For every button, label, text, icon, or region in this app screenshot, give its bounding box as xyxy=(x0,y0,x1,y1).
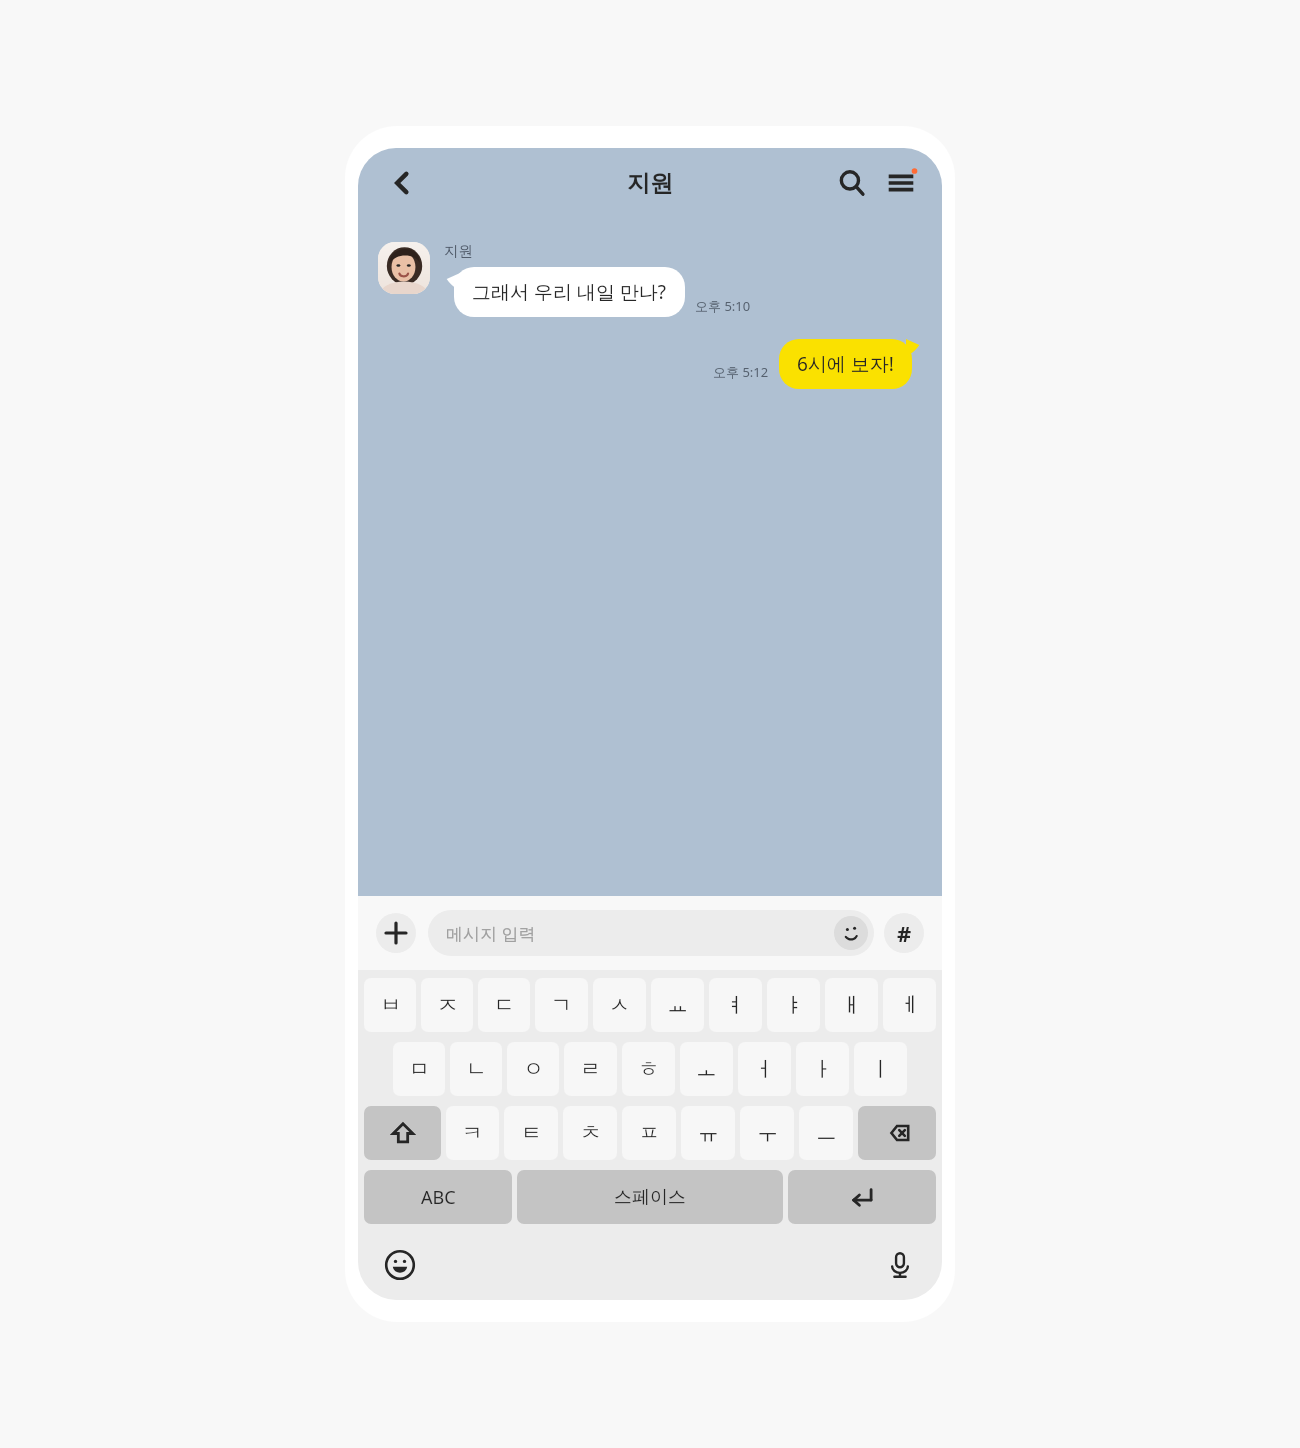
staticText: ㄴ xyxy=(466,1056,487,1082)
button[interactable]: 메시지 입력 xyxy=(428,910,874,956)
button[interactable]: Add attachment xyxy=(376,913,416,953)
staticText: ㅡ xyxy=(816,1120,837,1146)
staticText: ㅎ xyxy=(638,1056,659,1082)
button[interactable]: ㅔ xyxy=(883,978,936,1032)
button[interactable]: ㄱ xyxy=(535,978,588,1032)
button[interactable]: Enter xyxy=(788,1170,936,1224)
button[interactable]: Hashtag xyxy=(884,913,924,953)
staticText: ㅔ xyxy=(899,992,920,1018)
staticText: 그래서 우리 내일 만나? xyxy=(472,279,667,305)
button[interactable]: ㅕ xyxy=(709,978,762,1032)
button[interactable]: Profile photo xyxy=(378,242,430,294)
staticText: ㄷ xyxy=(494,992,515,1018)
button[interactable]: ㅛ xyxy=(651,978,704,1032)
staticText: ㅐ xyxy=(841,992,862,1018)
button[interactable]: ㅠ xyxy=(681,1106,735,1160)
button[interactable]: ㅜ xyxy=(740,1106,794,1160)
staticText: ㄹ xyxy=(580,1056,601,1082)
button[interactable]: 6시에 보자! xyxy=(779,339,912,389)
staticText: ㅑ xyxy=(783,992,804,1018)
button[interactable]: ㅍ xyxy=(622,1106,676,1160)
button[interactable]: ㅌ xyxy=(504,1106,558,1160)
button[interactable]: Search xyxy=(828,159,876,207)
staticText: ㄱ xyxy=(551,992,572,1018)
button[interactable]: Shift xyxy=(364,1106,441,1160)
button[interactable]: Emoji xyxy=(834,916,868,950)
staticText: ㅕ xyxy=(725,992,746,1018)
staticText: ㅂ xyxy=(380,992,401,1018)
button[interactable]: ㅇ xyxy=(507,1042,559,1096)
staticText: ㅌ xyxy=(521,1120,542,1146)
button[interactable]: ㅂ xyxy=(364,978,416,1032)
staticText: ㅅ xyxy=(609,992,630,1018)
button[interactable]: ㅅ xyxy=(593,978,646,1032)
button[interactable]: Backspace xyxy=(858,1106,936,1160)
button[interactable]: ㅑ xyxy=(767,978,820,1032)
staticText: 오후 5:12 xyxy=(713,363,769,381)
button[interactable]: ㅡ xyxy=(799,1106,853,1160)
staticText: 오후 5:10 xyxy=(695,297,751,315)
staticText: ㅓ xyxy=(754,1056,775,1082)
staticText: # xyxy=(897,918,912,948)
button[interactable]: Voice input xyxy=(878,1243,922,1287)
staticText: ㅊ xyxy=(580,1120,601,1146)
button[interactable]: ㅊ xyxy=(563,1106,617,1160)
button[interactable]: ㅓ xyxy=(738,1042,791,1096)
staticText: ABC xyxy=(421,1185,456,1210)
button[interactable]: ㅋ xyxy=(446,1106,499,1160)
button[interactable]: ㄷ xyxy=(478,978,530,1032)
button[interactable]: Menu xyxy=(876,158,926,208)
staticText: ㅗ xyxy=(696,1056,717,1082)
staticText: ㅜ xyxy=(757,1120,778,1146)
button[interactable]: ㅗ xyxy=(680,1042,733,1096)
button[interactable]: ㅈ xyxy=(421,978,473,1032)
button[interactable]: Back xyxy=(378,159,426,207)
button[interactable]: ㅣ xyxy=(854,1042,907,1096)
staticText: ㅣ xyxy=(870,1056,891,1082)
staticText: 6시에 보자! xyxy=(797,351,894,377)
button[interactable]: ABC xyxy=(364,1170,512,1224)
button[interactable]: 스페이스 xyxy=(517,1170,783,1224)
button[interactable]: ㄴ xyxy=(450,1042,502,1096)
staticText: 지원 xyxy=(444,242,473,260)
staticText: ㅍ xyxy=(639,1120,660,1146)
staticText: 지원 xyxy=(627,169,673,198)
staticText: 메시지 입력 xyxy=(446,922,834,945)
staticText: ㅇ xyxy=(523,1056,544,1082)
staticText: ㅛ xyxy=(667,992,688,1018)
button[interactable]: ㅐ xyxy=(825,978,878,1032)
staticText: ㅈ xyxy=(437,992,458,1018)
button[interactable]: ㄹ xyxy=(564,1042,617,1096)
button[interactable]: ㅏ xyxy=(796,1042,849,1096)
staticText: ㅋ xyxy=(462,1120,483,1146)
button[interactable]: ㅁ xyxy=(393,1042,445,1096)
button[interactable]: 그래서 우리 내일 만나? xyxy=(454,267,685,317)
staticText: 스페이스 xyxy=(614,1186,686,1209)
button[interactable]: Emoji keyboard xyxy=(378,1243,422,1287)
staticText: ㅠ xyxy=(698,1120,719,1146)
staticText: ㅁ xyxy=(409,1056,430,1082)
button[interactable]: ㅎ xyxy=(622,1042,675,1096)
staticText: ㅏ xyxy=(812,1056,833,1082)
